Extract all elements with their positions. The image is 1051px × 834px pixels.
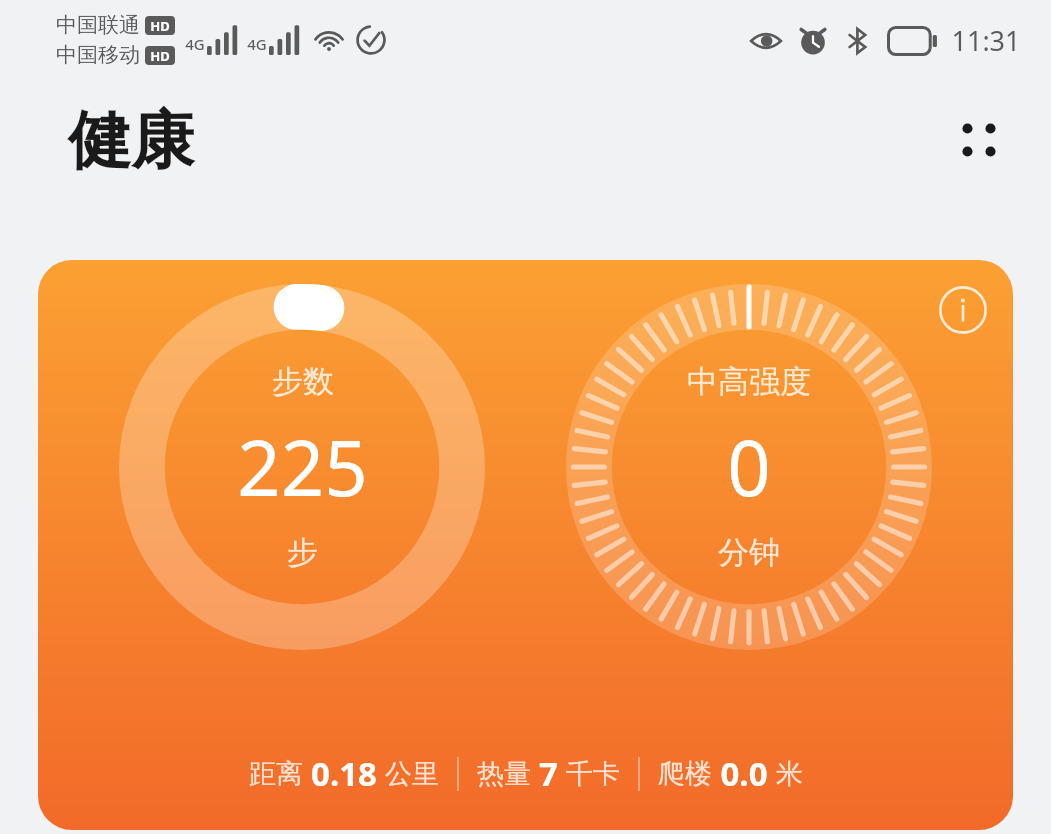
staticText: 7 (539, 751, 558, 796)
staticText: 米 (776, 757, 803, 791)
staticText: 中国联通 (56, 12, 140, 38)
staticText: 公里 (385, 757, 439, 791)
staticText: 中高强度 (687, 362, 811, 401)
staticText: 步数 (272, 362, 334, 401)
staticText: 11:31 (951, 22, 1021, 59)
staticText: 中国移动 (56, 42, 140, 68)
staticText: 0.18 (311, 751, 377, 796)
staticText: 千卡 (566, 757, 620, 791)
staticText: 健康 (68, 101, 194, 180)
staticText: 步 (287, 533, 318, 572)
button[interactable]: Information (935, 282, 991, 338)
staticText: HD (150, 47, 170, 65)
staticText: 225 (237, 415, 368, 519)
staticText: 4G (247, 34, 267, 54)
button[interactable]: More options (939, 100, 1019, 180)
staticText: 爬楼 (658, 757, 712, 791)
staticText: 热量 (477, 757, 531, 791)
button[interactable]: Information (38, 260, 1013, 830)
staticText: 0.0 (720, 751, 768, 796)
staticText: 0 (727, 415, 771, 519)
staticText: 距离 (249, 757, 303, 791)
staticText: 4G (185, 34, 205, 54)
staticText: HD (150, 17, 170, 35)
staticText: 分钟 (718, 533, 780, 572)
